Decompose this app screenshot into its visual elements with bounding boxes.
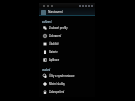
button[interactable]: Aplikace xyxy=(39,56,95,64)
staticText: Místní služby xyxy=(49,82,65,86)
staticText: zařízení xyxy=(42,20,52,24)
button[interactable]: Účty a synchronizace xyxy=(39,72,95,80)
button[interactable]: Úložiště xyxy=(39,40,95,48)
staticText: Zabezpečení xyxy=(49,90,65,94)
button[interactable]: Baterie xyxy=(39,48,95,56)
staticText: Zvukové profily xyxy=(49,26,68,30)
button[interactable]: Místní služby xyxy=(39,80,95,88)
staticText: osobní xyxy=(42,68,51,72)
staticText: Baterie xyxy=(49,50,58,54)
staticText: Účty a synchronizace xyxy=(49,74,75,78)
staticText: Úložiště xyxy=(49,42,59,46)
button[interactable]: Zobrazení xyxy=(39,32,95,40)
button[interactable]: Nastavení xyxy=(39,8,95,15)
button[interactable]: Zvukové profily xyxy=(39,24,95,32)
staticText: Zobrazení xyxy=(49,34,62,38)
button[interactable]: Zabezpečení xyxy=(39,88,95,96)
staticText: Nastavení xyxy=(48,10,63,14)
staticText: Aplikace xyxy=(49,58,60,62)
